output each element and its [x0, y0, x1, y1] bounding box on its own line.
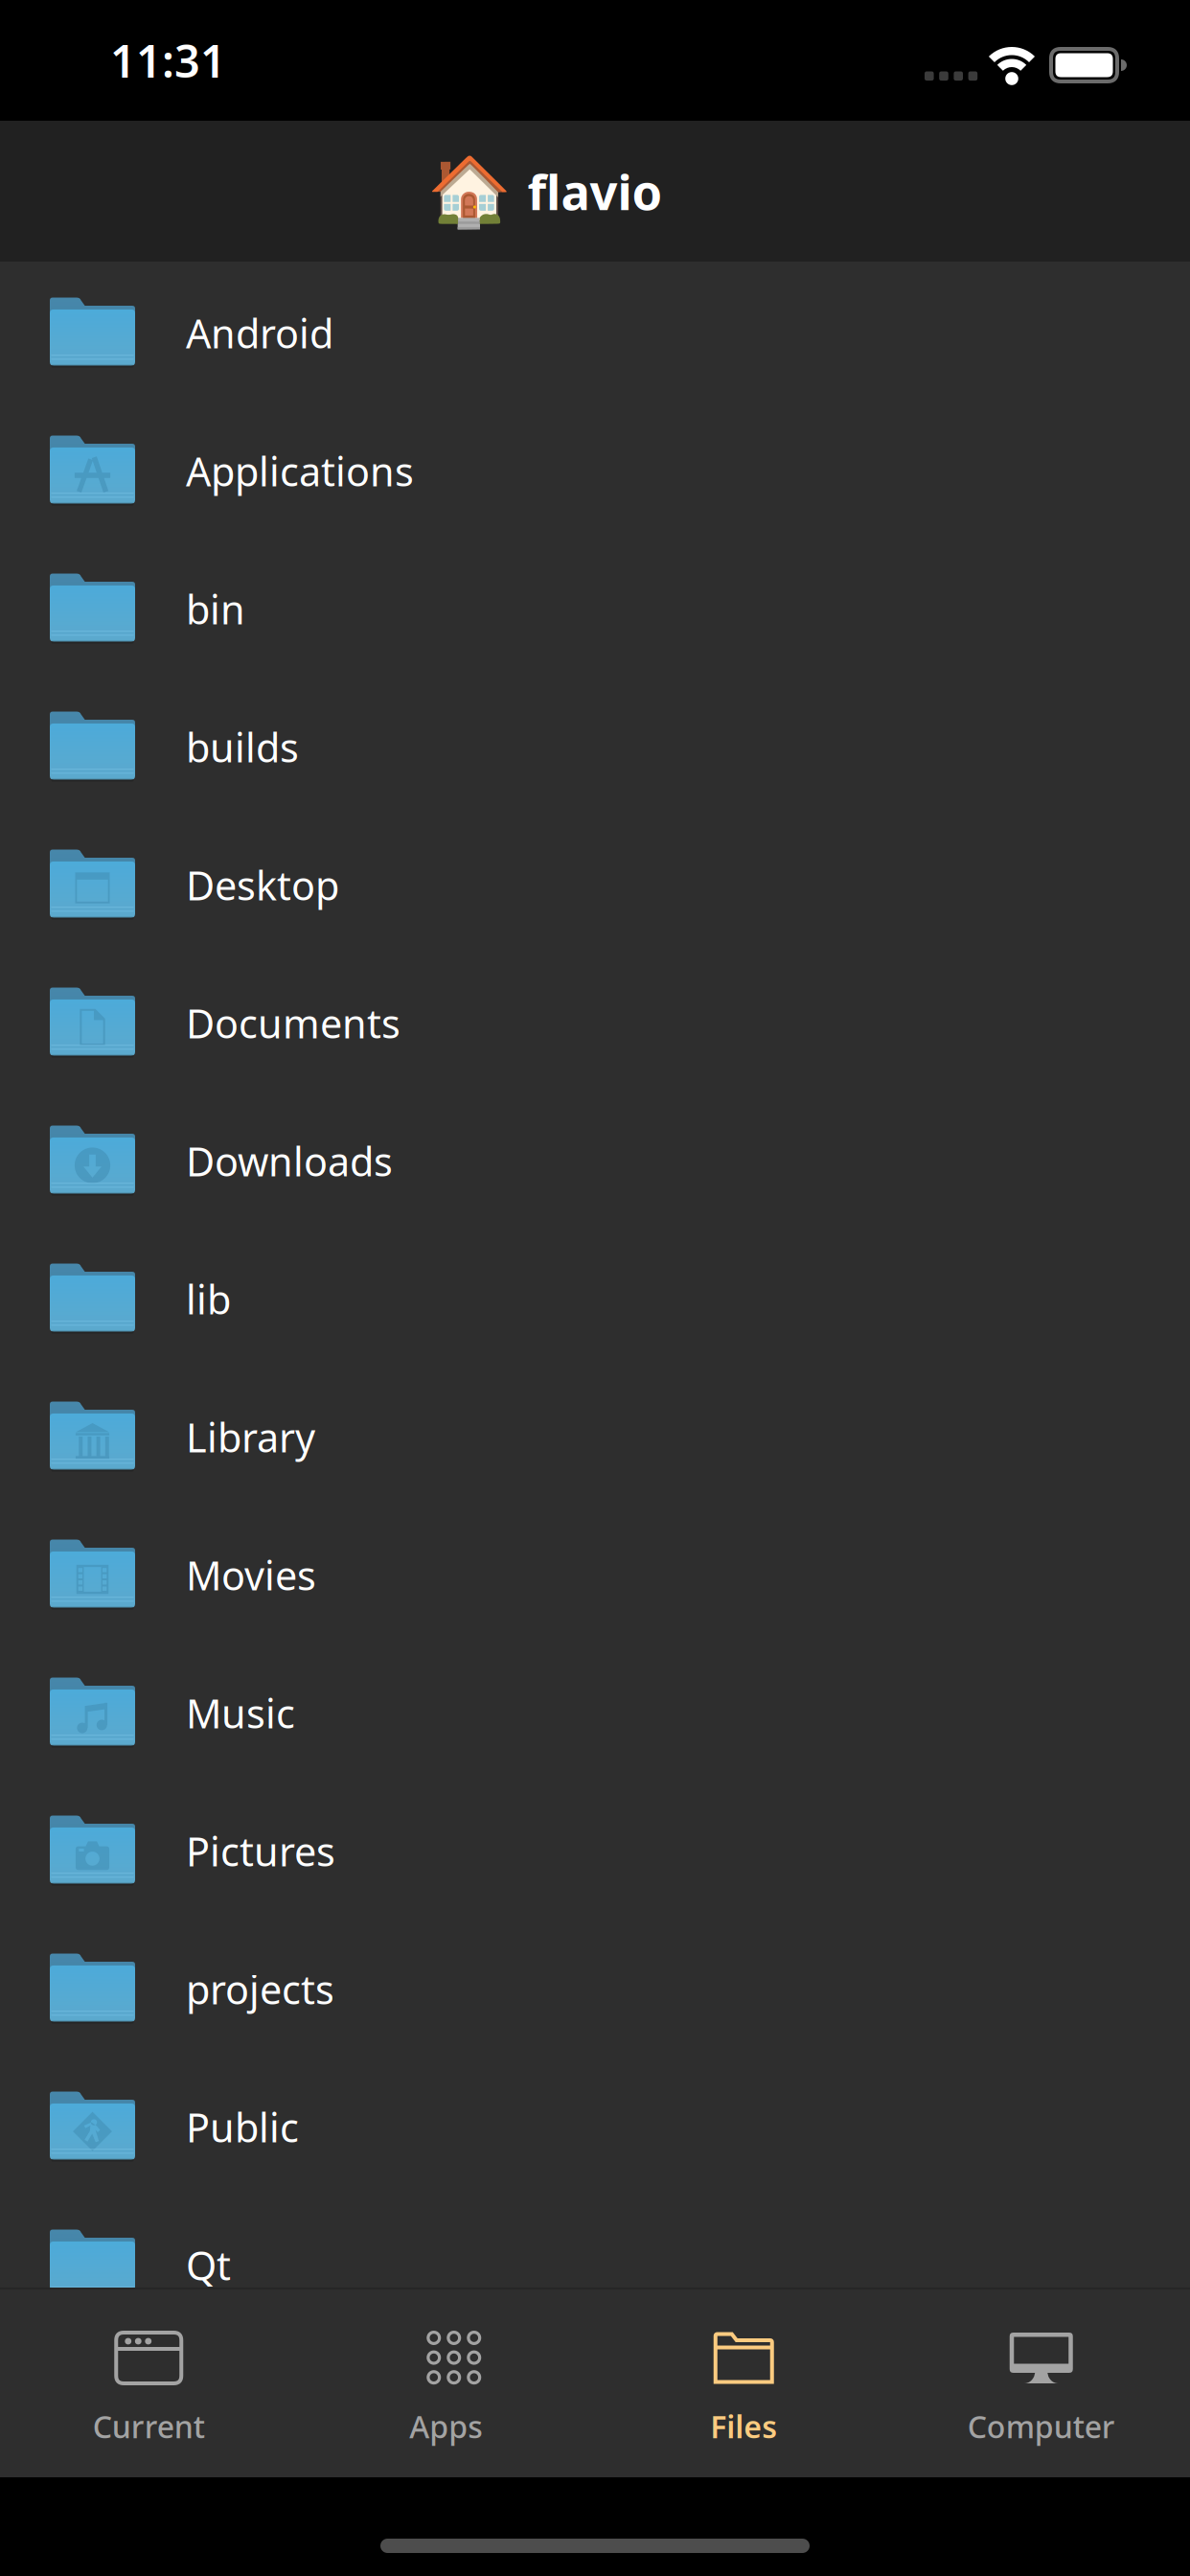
button[interactable]: bin — [0, 538, 1190, 676]
staticText: Movies — [186, 1549, 316, 1601]
staticText: Music — [186, 1687, 295, 1739]
staticText: Computer — [968, 2406, 1115, 2447]
button[interactable]: Music — [0, 1642, 1190, 1780]
button[interactable]: Pictures — [0, 1780, 1190, 1918]
staticText: bin — [186, 583, 245, 635]
button[interactable]: Movies — [0, 1504, 1190, 1642]
staticText: Documents — [186, 997, 400, 1049]
staticText: Apps — [409, 2406, 483, 2447]
staticText: Current — [93, 2406, 205, 2447]
staticText: Public — [186, 2101, 299, 2153]
staticText: Applications — [186, 445, 414, 497]
staticText: Files — [710, 2406, 777, 2447]
button[interactable]: builds — [0, 676, 1190, 814]
button[interactable]: Applications — [0, 400, 1190, 538]
staticText: Android — [186, 307, 333, 359]
staticText: Qt — [186, 2239, 231, 2291]
button[interactable]: Files — [595, 2288, 892, 2477]
button[interactable]: Current — [0, 2288, 297, 2477]
staticText: 11:31 — [110, 31, 226, 90]
button[interactable]: projects — [0, 1918, 1190, 2056]
button[interactable]: Qt — [0, 2194, 1190, 2332]
button[interactable]: Documents — [0, 952, 1190, 1090]
button[interactable]: Apps — [297, 2288, 595, 2477]
staticText: Pictures — [186, 1825, 335, 1877]
staticText: Downloads — [186, 1135, 393, 1187]
staticText: flavio — [527, 159, 663, 223]
staticText: 🏠 — [427, 152, 512, 230]
button[interactable]: Android — [0, 262, 1190, 400]
staticText: Library — [186, 1411, 315, 1463]
button[interactable]: Library — [0, 1366, 1190, 1504]
button[interactable]: Desktop — [0, 814, 1190, 952]
staticText: lib — [186, 1273, 231, 1325]
button[interactable]: Public — [0, 2056, 1190, 2194]
button[interactable]: Downloads — [0, 1090, 1190, 1228]
staticText: Desktop — [186, 859, 339, 911]
staticText: builds — [186, 721, 299, 773]
button[interactable]: lib — [0, 1228, 1190, 1366]
button[interactable]: Computer — [892, 2288, 1190, 2477]
staticText: projects — [186, 1963, 334, 2015]
